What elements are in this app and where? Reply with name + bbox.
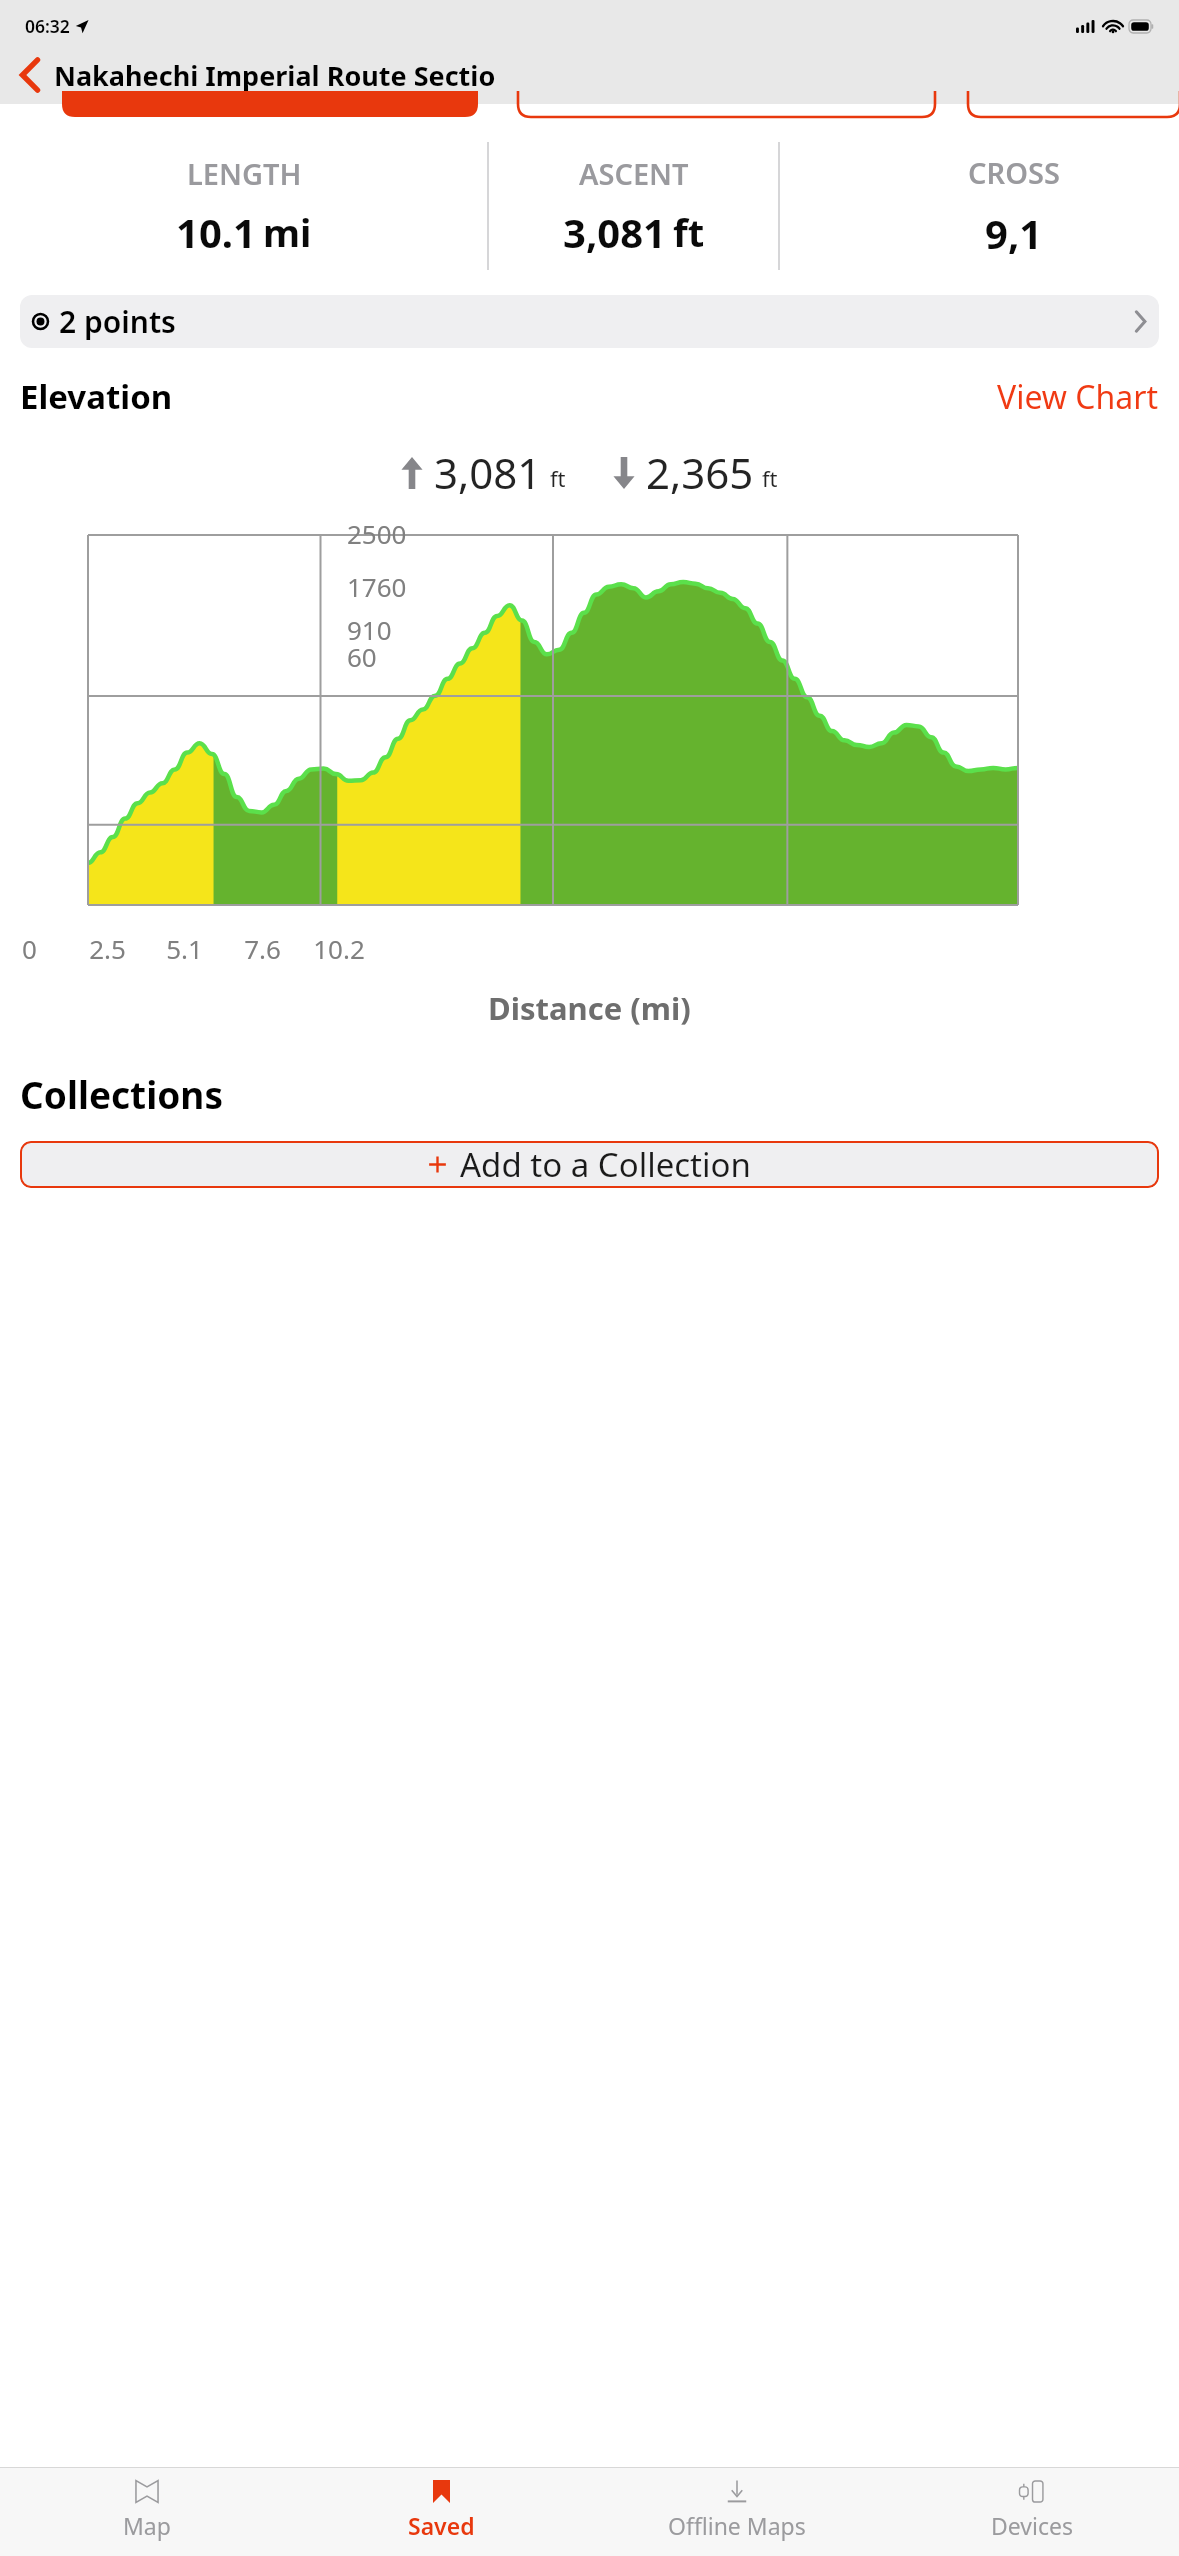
- staticText: 2 points: [59, 301, 176, 342]
- staticText: 0: [22, 931, 37, 966]
- staticText: 3,081: [563, 205, 666, 259]
- staticText: Nakahechi Imperial Route Sectio: [54, 57, 496, 94]
- button[interactable]: Map: [0, 2468, 294, 2556]
- staticText: LENGTH: [187, 154, 302, 193]
- button[interactable]: 2 points: [20, 295, 1159, 348]
- staticText: 3,081: [434, 444, 542, 501]
- button[interactable]: Back: [8, 53, 52, 97]
- staticText: ASCENT: [579, 154, 689, 193]
- staticText: Distance (mi): [488, 987, 691, 1029]
- staticText: 2.5: [89, 931, 126, 966]
- staticText: 1760: [347, 569, 407, 604]
- staticText: 2500: [347, 516, 407, 551]
- button[interactable]: View Chart: [997, 375, 1159, 419]
- staticText: 10.1: [176, 205, 256, 259]
- staticText: CROSS: [968, 153, 1060, 192]
- staticText: Map: [123, 2510, 171, 2541]
- staticText: Add to a Collection: [460, 1142, 751, 1187]
- staticText: 06:32: [25, 14, 70, 38]
- staticText: 910: [347, 612, 392, 647]
- staticText: Collections: [20, 1069, 223, 1119]
- staticText: View Chart: [997, 375, 1159, 419]
- staticText: ft: [762, 463, 778, 493]
- button[interactable]: Devices: [884, 2468, 1179, 2556]
- staticText: Offline Maps: [668, 2510, 806, 2541]
- staticText: 60: [347, 639, 377, 674]
- staticText: 2,365: [646, 444, 754, 501]
- staticText: 9,1: [985, 206, 1043, 260]
- staticText: Saved: [408, 2510, 475, 2541]
- staticText: 10.2: [313, 931, 365, 966]
- staticText: 5.1: [166, 931, 203, 966]
- staticText: 7.6: [244, 931, 281, 966]
- button[interactable]: Saved: [294, 2468, 589, 2556]
- staticText: mi: [263, 206, 312, 258]
- staticText: Elevation: [20, 374, 173, 419]
- button[interactable]: Offline Maps: [589, 2468, 884, 2556]
- staticText: Devices: [991, 2510, 1073, 2541]
- button[interactable]: Add to a Collection: [20, 1141, 1159, 1188]
- staticText: ft: [550, 463, 566, 493]
- staticText: ft: [673, 206, 705, 258]
